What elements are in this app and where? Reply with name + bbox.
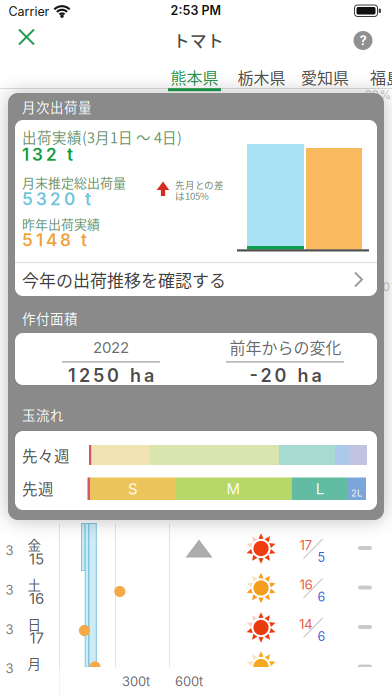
staticText: 2:53 PM	[170, 3, 221, 18]
staticText: は105%	[175, 189, 209, 202]
staticText: 16	[29, 589, 44, 607]
button[interactable]: 今年の出荷推移を確認する	[15, 263, 377, 296]
button[interactable]: Help	[341, 18, 385, 62]
staticText: 昨年出荷実績	[22, 214, 100, 233]
staticText: L	[316, 480, 324, 498]
button[interactable]: 栃木県	[229, 62, 293, 92]
staticText: 愛知県	[301, 65, 349, 89]
staticText: 先月との差	[175, 178, 224, 191]
staticText: 月次出荷量	[22, 97, 92, 116]
button[interactable]: 福島県	[362, 62, 392, 92]
staticText: 先週	[22, 477, 54, 500]
staticText: 月	[27, 653, 41, 673]
staticText: 作付面積	[22, 308, 78, 328]
button[interactable]: Close	[4, 15, 48, 59]
staticText: 2L	[351, 487, 362, 499]
staticText: 栃木県	[237, 65, 285, 89]
staticText: トマト	[173, 28, 224, 52]
staticText: 先々週	[22, 444, 70, 467]
staticText: 今年の出荷推移を確認する	[22, 267, 226, 292]
staticText: 600t	[175, 674, 203, 689]
staticText: 金	[27, 535, 41, 554]
staticText: 1 2 5 0 h a	[68, 365, 154, 386]
staticText: 3	[5, 543, 13, 558]
staticText: 17	[299, 537, 312, 553]
staticText: 3	[5, 661, 13, 676]
staticText: 1 3 2 t	[22, 144, 73, 165]
staticText: ?	[359, 33, 366, 48]
staticText: 15	[29, 550, 44, 568]
staticText: 土	[27, 575, 41, 594]
staticText: 30%	[364, 88, 391, 102]
button[interactable]: 熊本県	[162, 62, 226, 92]
staticText: Carrier	[8, 4, 49, 19]
staticText: 3	[5, 582, 13, 598]
staticText: 5	[317, 550, 325, 565]
staticText: 6	[317, 629, 325, 644]
staticText: 6	[317, 589, 325, 604]
staticText: - 2 0 h a	[249, 365, 321, 386]
staticText: 16	[299, 576, 312, 593]
staticText: S	[128, 480, 138, 498]
staticText: 300t	[122, 674, 150, 689]
staticText: 2022	[93, 338, 129, 356]
staticText: 月末推定総出荷量	[22, 173, 126, 191]
staticText: 17	[29, 629, 43, 647]
staticText: 福島県	[370, 65, 392, 89]
button[interactable]: 愛知県	[293, 62, 357, 92]
staticText: 日	[27, 614, 41, 634]
staticText: 熊本県	[170, 65, 218, 89]
staticText: 20%	[375, 280, 392, 294]
staticText: 前年からの変化	[229, 335, 341, 359]
staticText: 5 1 4 8 t	[22, 230, 87, 250]
staticText: 出荷実績(3月1日 〜 4日)	[22, 126, 182, 147]
staticText: 3	[5, 622, 13, 637]
staticText: 5 3 2 0 t	[22, 189, 91, 209]
staticText: 14	[299, 616, 313, 632]
staticText: 玉流れ	[22, 405, 64, 424]
staticText: M	[226, 480, 240, 498]
